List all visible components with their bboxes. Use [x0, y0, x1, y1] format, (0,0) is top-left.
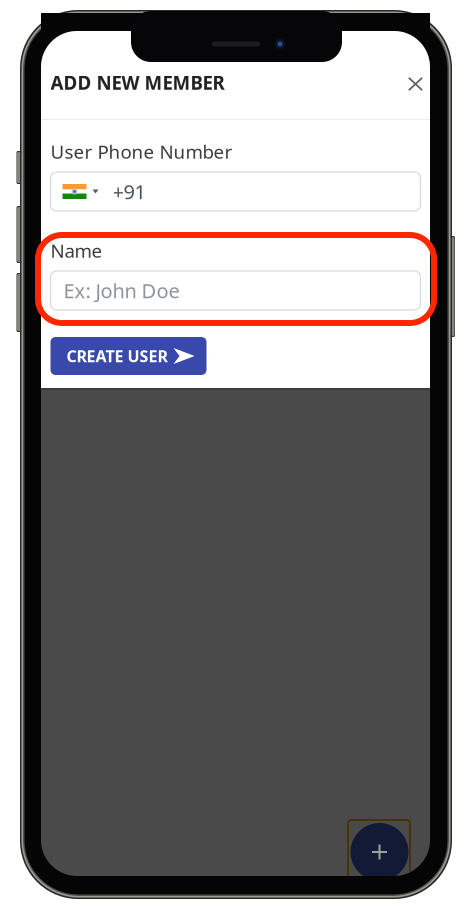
staticText: CREATE USER: [66, 345, 167, 367]
staticText: Ex: John Doe: [63, 277, 179, 304]
button[interactable]: Add member: [350, 823, 408, 881]
button[interactable]: Ex: John Doe: [50, 271, 420, 310]
staticText: +91: [112, 178, 145, 205]
button[interactable]: +91: [50, 172, 420, 211]
staticText: Name: [50, 238, 102, 263]
button[interactable]: Close: [398, 67, 432, 101]
button[interactable]: CREATE USER: [50, 337, 206, 375]
staticText: ADD NEW MEMBER: [50, 70, 224, 95]
staticText: User Phone Number: [50, 139, 232, 164]
